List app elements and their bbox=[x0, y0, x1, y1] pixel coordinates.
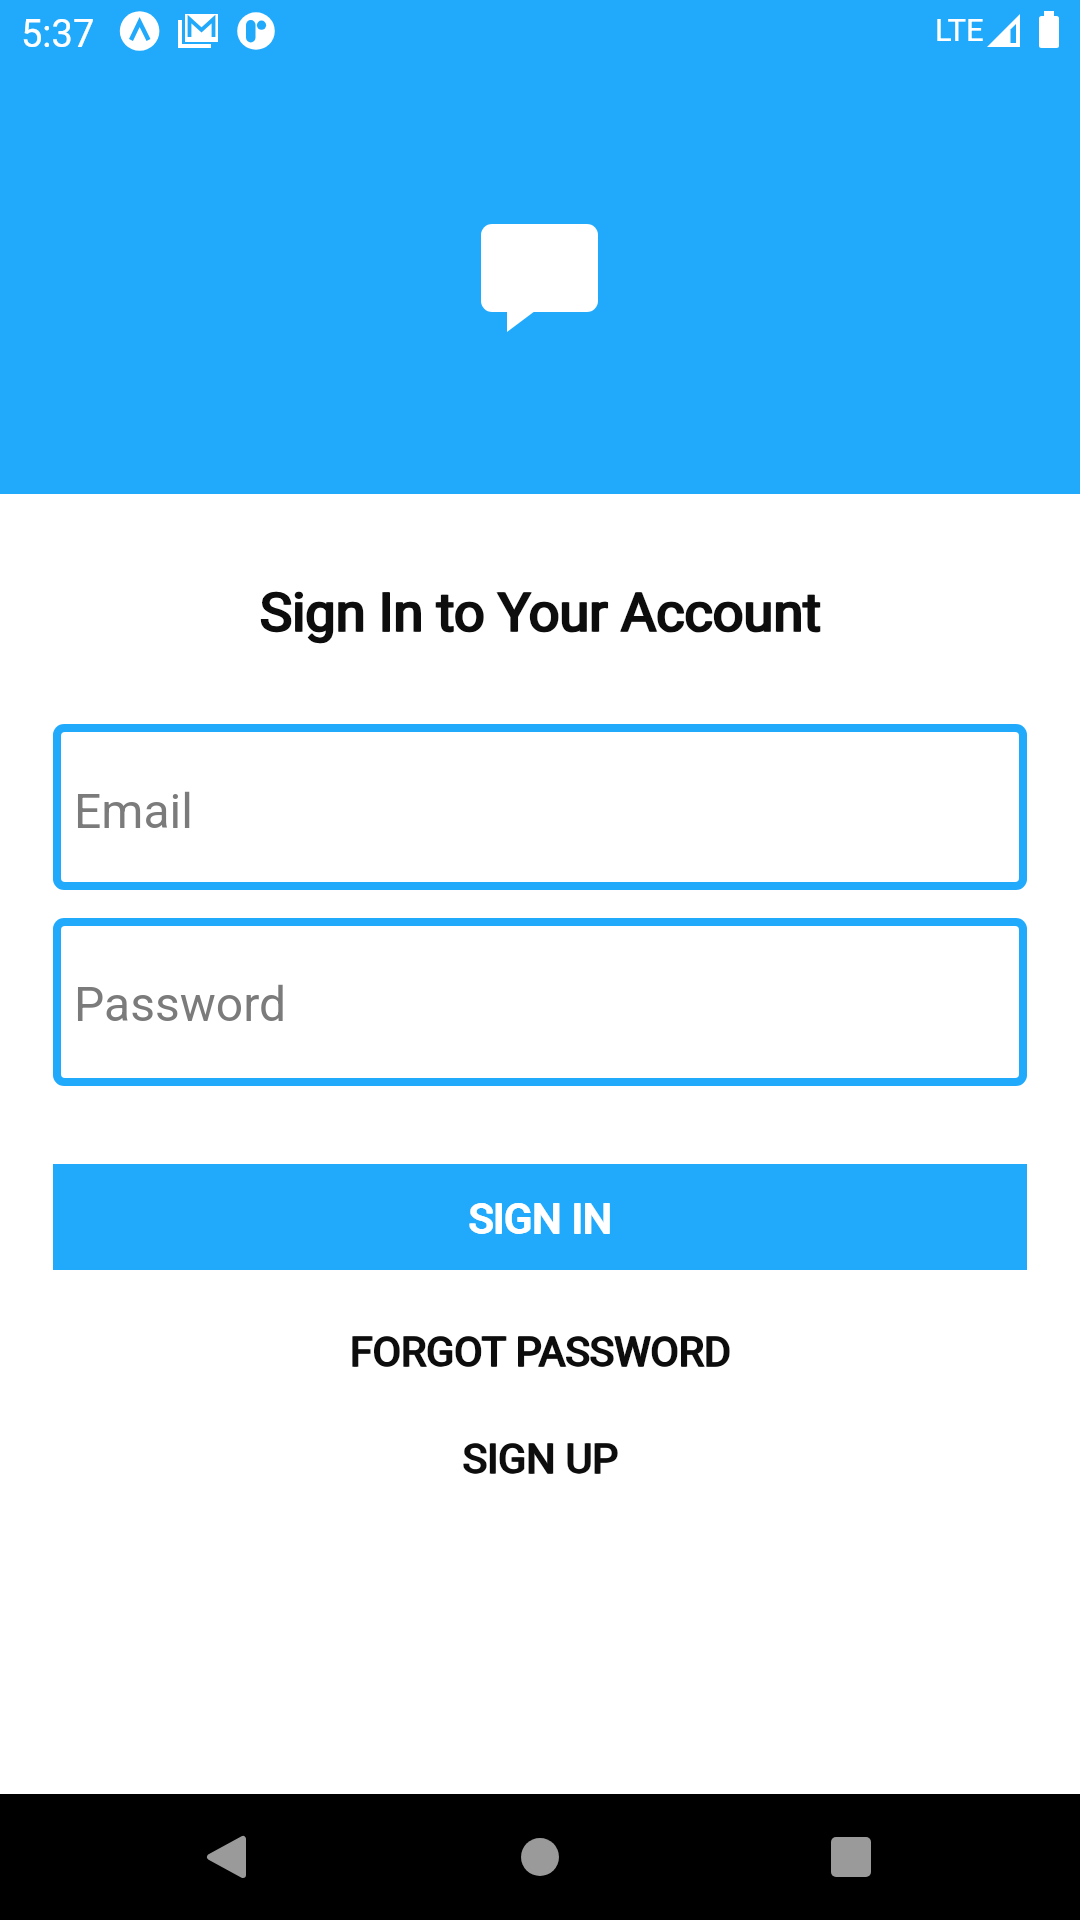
button[interactable]: FORGOT PASSWORD bbox=[0, 1307, 1080, 1397]
button[interactable]: Email bbox=[61, 732, 1019, 882]
button[interactable]: SIGN IN bbox=[53, 1164, 1027, 1270]
button[interactable]: Recent apps bbox=[811, 1817, 891, 1897]
staticText: Sign In to Your Account bbox=[1, 581, 1080, 644]
button[interactable]: Back bbox=[186, 1817, 266, 1897]
staticText: FORGOT PASSWORD bbox=[1, 1328, 1080, 1376]
staticText: FORGOT PASSWORD bbox=[0, 1328, 1080, 1376]
staticText: SIGN UP bbox=[1, 1435, 1080, 1483]
staticText: Password bbox=[74, 976, 287, 1032]
staticText: LTE bbox=[935, 12, 984, 48]
staticText: 5:37 bbox=[21, 12, 95, 57]
staticText: Email bbox=[74, 783, 193, 839]
button[interactable]: SIGN UP bbox=[0, 1414, 1080, 1504]
button[interactable]: Home bbox=[500, 1817, 580, 1897]
staticText: SIGN IN bbox=[54, 1195, 1028, 1243]
button[interactable]: Password bbox=[61, 926, 1019, 1078]
staticText: SIGN UP bbox=[0, 1435, 1080, 1483]
staticText: SIGN IN bbox=[53, 1195, 1027, 1243]
staticText: Sign In to Your Account bbox=[0, 581, 1080, 644]
